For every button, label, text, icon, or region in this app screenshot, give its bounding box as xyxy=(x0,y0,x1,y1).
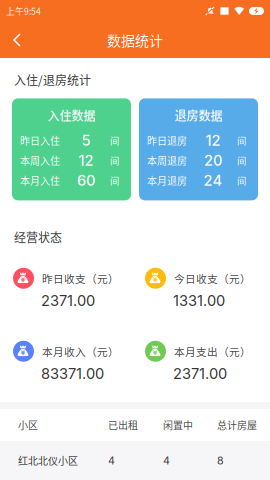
staticText: 83371.00 xyxy=(41,365,104,383)
staticText: 小区 xyxy=(18,418,38,432)
staticText: 12 xyxy=(78,151,93,169)
staticText: 24 xyxy=(203,171,222,189)
staticText: 昨日收支（元） xyxy=(42,270,119,286)
staticText: 20 xyxy=(204,151,222,169)
staticText: 今日收支（元） xyxy=(174,270,251,286)
staticText: 本月退房 xyxy=(147,173,187,188)
staticText: 1331.00 xyxy=(173,292,225,310)
staticText: 总计房屋 xyxy=(217,418,257,432)
staticText: 4 xyxy=(163,454,170,467)
staticText: 入住/退房统计 xyxy=(14,71,91,88)
staticText: 本月收入（元） xyxy=(42,343,119,359)
staticText: 经营状态 xyxy=(14,228,62,246)
staticText: 5 xyxy=(81,131,90,149)
staticText: 间 xyxy=(237,174,246,187)
staticText: 60 xyxy=(77,171,95,189)
staticText: 昨日退房 xyxy=(147,133,187,148)
staticText: 昨日入住 xyxy=(20,133,60,148)
staticText: 数据统计 xyxy=(107,30,163,50)
staticText: 间 xyxy=(237,134,246,147)
staticText: 2371.00 xyxy=(41,292,95,310)
staticText: 间 xyxy=(110,154,119,167)
staticText: 2371.00 xyxy=(173,365,227,383)
staticText: 12 xyxy=(205,131,220,149)
staticText: 本周入住 xyxy=(20,153,60,168)
staticText: 入住数据 xyxy=(47,107,95,124)
staticText: 本月入住 xyxy=(20,173,60,188)
staticText: 间 xyxy=(110,134,119,147)
staticText: 退房数据 xyxy=(174,107,222,124)
button[interactable]: Back xyxy=(0,22,34,58)
staticText: 红北北仪小区 xyxy=(18,453,78,468)
staticText: 间 xyxy=(110,174,119,187)
staticText: 4 xyxy=(108,454,115,467)
staticText: 已出租 xyxy=(108,418,138,432)
staticText: 闲置中 xyxy=(163,418,193,432)
staticText: 本月支出（元） xyxy=(174,343,251,359)
staticText: 8 xyxy=(217,454,224,467)
staticText: 间 xyxy=(237,154,246,167)
staticText: 本周退房 xyxy=(147,153,187,168)
staticText: 上午9:54 xyxy=(6,5,41,17)
